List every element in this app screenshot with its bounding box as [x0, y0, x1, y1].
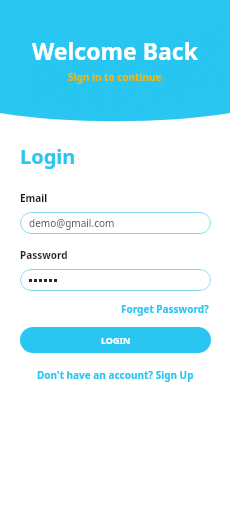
staticText: Don't have an account? Sign Up [37, 368, 194, 382]
staticText: LOGIN [101, 334, 131, 346]
staticText: Sign in to continue [68, 70, 162, 84]
button[interactable]: Password field [20, 269, 211, 291]
button[interactable]: Email field [20, 212, 211, 234]
staticText: Email [20, 191, 48, 205]
button[interactable]: LOGIN [20, 327, 211, 353]
button[interactable]: Don't have an account? Sign Up [34, 366, 197, 384]
staticText: Login [20, 143, 76, 170]
staticText: demo@gmail.com [29, 216, 115, 230]
staticText: Password [20, 248, 68, 262]
button[interactable]: Forget Password? [119, 300, 211, 318]
staticText: Welcome Back [32, 35, 198, 66]
staticText: Forget Password? [121, 302, 209, 316]
